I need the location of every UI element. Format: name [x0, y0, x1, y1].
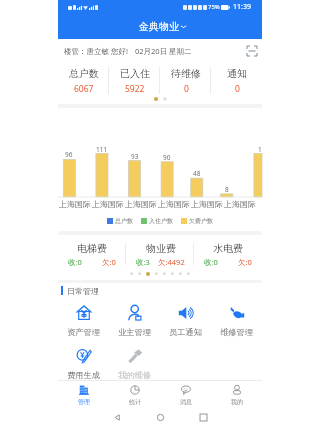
- staticText: 欠:0: [238, 257, 252, 267]
- staticText: 员工通知: [169, 327, 202, 337]
- staticText: 5922: [125, 83, 145, 94]
- button[interactable]: 统计: [109, 381, 160, 406]
- button[interactable]: 我的: [211, 381, 262, 406]
- staticText: 消息: [180, 398, 192, 406]
- button[interactable]: 资产管理: [58, 305, 109, 337]
- button[interactable]: Back: [109, 409, 125, 425]
- button[interactable]: 总户数: [58, 67, 109, 94]
- staticText: 11:39: [233, 2, 251, 12]
- staticText: 费用生成: [67, 370, 100, 380]
- button[interactable]: 水电费: [194, 241, 262, 267]
- button[interactable]: Recents: [195, 409, 211, 425]
- staticText: 02月20日 星期二: [135, 46, 192, 56]
- staticText: 上海国际: [59, 199, 91, 209]
- staticText: 日常管理: [67, 286, 99, 296]
- staticText: 90: [163, 153, 171, 162]
- staticText: 欠:4492: [158, 257, 185, 267]
- staticText: 111: [96, 145, 108, 154]
- staticText: 欠费户数: [189, 217, 213, 225]
- staticText: 0: [184, 83, 189, 94]
- staticText: 欠:0: [102, 257, 116, 267]
- staticText: 96: [65, 150, 73, 159]
- staticText: 总户数: [69, 67, 99, 80]
- button[interactable]: Home: [152, 409, 168, 425]
- button[interactable]: 待维修: [160, 67, 211, 94]
- staticText: 我的维修: [118, 370, 151, 380]
- staticText: 总户数: [115, 217, 133, 225]
- staticText: 0: [235, 83, 240, 94]
- staticText: 业主管理: [118, 327, 151, 337]
- staticText: 电梯费: [77, 242, 107, 255]
- staticText: 楼管：唐立敏 您好!: [64, 46, 128, 56]
- button[interactable]: 通知: [211, 67, 262, 94]
- button[interactable]: 电梯费: [58, 241, 126, 267]
- staticText: 上海国际: [224, 199, 256, 209]
- button[interactable]: 已入住: [109, 67, 160, 94]
- staticText: 统计: [129, 398, 141, 406]
- button[interactable]: 消息: [160, 381, 211, 406]
- button[interactable]: 我的维修: [109, 348, 160, 380]
- staticText: 75%: [208, 3, 220, 11]
- staticText: 收:0: [204, 257, 218, 267]
- staticText: 维修管理: [220, 327, 253, 337]
- staticText: 通知: [227, 67, 247, 80]
- staticText: 上海国际: [92, 199, 124, 209]
- staticText: 已入住: [120, 67, 150, 80]
- staticText: 收:3: [136, 257, 150, 267]
- button[interactable]: 扫一扫: [246, 45, 257, 56]
- button[interactable]: 物业费: [126, 241, 194, 267]
- button[interactable]: 管理: [58, 381, 109, 406]
- staticText: 6067: [74, 83, 94, 94]
- staticText: 93: [131, 152, 139, 161]
- staticText: 上海国际: [125, 199, 157, 209]
- staticText: 入住户数: [149, 217, 173, 225]
- staticText: 收:0: [68, 257, 82, 267]
- button[interactable]: 费用生成: [58, 348, 109, 380]
- staticText: 上海国际: [158, 199, 190, 209]
- staticText: 管理: [78, 398, 90, 406]
- staticText: 8: [225, 185, 229, 194]
- staticText: 金典物业: [139, 20, 179, 33]
- staticText: 待维修: [171, 67, 201, 80]
- staticText: 48: [193, 169, 201, 178]
- staticText: 物业费: [146, 242, 176, 255]
- button[interactable]: 维修管理: [211, 305, 262, 337]
- staticText: 1: [258, 145, 262, 154]
- staticText: 我的: [231, 398, 243, 406]
- button[interactable]: 金典物业: [131, 18, 195, 35]
- button[interactable]: 业主管理: [109, 305, 160, 337]
- staticText: 资产管理: [67, 327, 100, 337]
- staticText: 上海国际: [191, 199, 223, 209]
- staticText: 水电费: [213, 242, 243, 255]
- button[interactable]: 员工通知: [160, 305, 211, 337]
